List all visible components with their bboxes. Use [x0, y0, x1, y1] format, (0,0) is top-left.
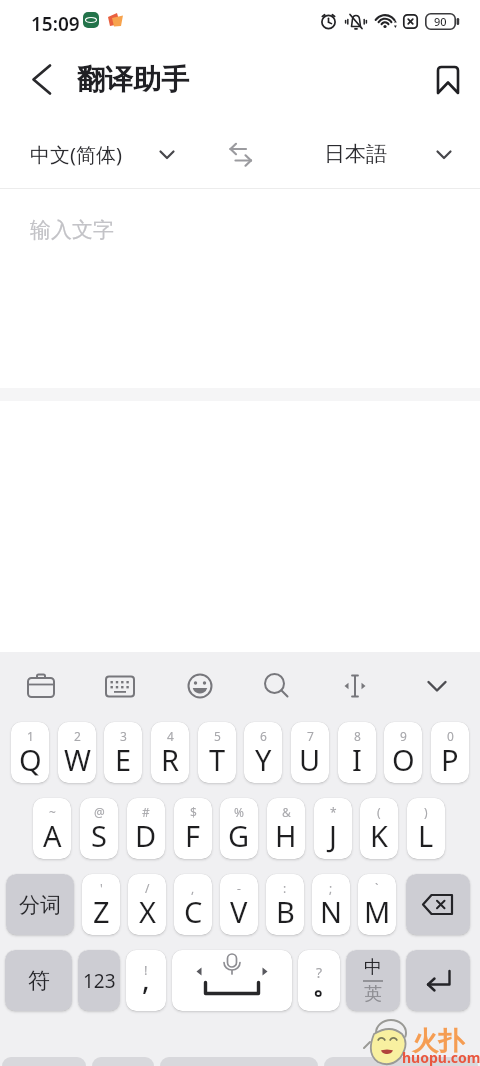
staticText: 0 — [447, 728, 454, 744]
staticText: I — [352, 740, 362, 779]
button[interactable]: ? — [298, 950, 340, 1011]
staticText: O — [392, 740, 415, 779]
button[interactable]: # — [127, 798, 165, 859]
staticText: 中 — [364, 956, 382, 979]
staticText: Z — [93, 892, 110, 931]
staticText: X — [139, 892, 156, 931]
button[interactable] — [339, 670, 371, 702]
button[interactable]: 9 — [384, 722, 422, 783]
button[interactable]: 2 — [58, 722, 96, 783]
button[interactable]: 6 — [244, 722, 282, 783]
button[interactable]: / — [128, 874, 166, 935]
staticText: : — [283, 880, 287, 896]
button[interactable]: % — [220, 798, 258, 859]
staticText: % — [234, 804, 244, 820]
staticText: 15:09 — [31, 11, 80, 37]
button[interactable] — [22, 62, 58, 98]
staticText: N — [320, 892, 343, 931]
staticText: 8 — [354, 728, 361, 744]
button[interactable]: : — [266, 874, 304, 935]
button[interactable]: 123 — [78, 950, 120, 1011]
button[interactable]: ) — [407, 798, 445, 859]
button[interactable] — [104, 670, 136, 702]
button[interactable]: 4 — [151, 722, 189, 783]
staticText: 90 — [434, 14, 447, 29]
staticText: P — [441, 740, 459, 779]
staticText: $ — [190, 804, 197, 820]
button[interactable]: 1 — [11, 722, 49, 783]
staticText: 9 — [400, 728, 407, 744]
button[interactable]: 符 — [5, 950, 72, 1011]
staticText: ' — [100, 880, 103, 896]
button[interactable] — [428, 60, 468, 100]
staticText: H — [275, 816, 297, 855]
staticText: 。 — [312, 969, 338, 1002]
button[interactable]: 分词 — [6, 874, 74, 935]
staticText: T — [209, 740, 226, 779]
button[interactable]: ! — [126, 950, 166, 1011]
staticText: S — [91, 816, 107, 855]
staticText: 2 — [74, 728, 81, 744]
staticText: 7 — [307, 728, 314, 744]
button[interactable] — [184, 670, 216, 702]
staticText: 4 — [167, 728, 174, 744]
staticText: 翻译助手 — [77, 62, 189, 97]
staticText: 英 — [364, 983, 382, 1006]
button[interactable] — [406, 950, 470, 1011]
button[interactable]: - — [220, 874, 258, 935]
button[interactable] — [220, 134, 260, 174]
button[interactable]: $ — [174, 798, 212, 859]
staticText: M — [364, 892, 391, 931]
button[interactable]: 日本語 — [310, 132, 470, 176]
staticText: 123 — [83, 968, 116, 994]
button[interactable]: ' — [82, 874, 120, 935]
button[interactable]: & — [267, 798, 305, 859]
staticText: , — [142, 960, 150, 998]
button[interactable]: 3 — [104, 722, 142, 783]
button[interactable] — [406, 874, 470, 935]
staticText: huopu.com — [402, 1048, 480, 1066]
staticText: 5 — [214, 728, 221, 744]
button[interactable] — [421, 670, 453, 702]
staticText: 输入文字 — [30, 217, 114, 243]
button[interactable]: ; — [312, 874, 350, 935]
button[interactable]: ( — [360, 798, 398, 859]
button[interactable]: 8 — [338, 722, 376, 783]
staticText: W — [64, 740, 91, 779]
staticText: * — [330, 804, 337, 820]
staticText: B — [276, 892, 295, 931]
staticText: @ — [94, 804, 105, 820]
staticText: J — [329, 816, 337, 855]
button[interactable]: 中文(简体) — [18, 132, 188, 176]
staticText: ) — [424, 804, 428, 820]
button[interactable] — [260, 670, 292, 702]
button[interactable]: * — [314, 798, 352, 859]
staticText: L — [418, 816, 434, 855]
staticText: , — [191, 880, 195, 896]
button[interactable]: ~ — [33, 798, 71, 859]
button[interactable]: 0 — [431, 722, 469, 783]
staticText: 6 — [260, 728, 267, 744]
staticText: 中文(简体) — [30, 141, 122, 168]
button[interactable] — [25, 670, 57, 702]
staticText: & — [282, 804, 291, 820]
button[interactable]: 7 — [291, 722, 329, 783]
staticText: - — [237, 880, 241, 896]
staticText: 分词 — [19, 892, 61, 918]
staticText: 1 — [27, 728, 34, 744]
button[interactable]: , — [174, 874, 212, 935]
staticText: ? — [316, 963, 323, 982]
staticText: ( — [377, 804, 381, 820]
button[interactable]: @ — [80, 798, 118, 859]
staticText: ` — [375, 880, 379, 896]
staticText: R — [161, 740, 180, 779]
button[interactable]: ` — [358, 874, 396, 935]
staticText: ! — [144, 961, 148, 979]
staticText: 3 — [120, 728, 127, 744]
staticText: K — [370, 816, 388, 855]
button[interactable] — [172, 950, 292, 1011]
staticText: F — [185, 816, 201, 855]
button[interactable]: 5 — [198, 722, 236, 783]
button[interactable]: 中 — [346, 950, 400, 1011]
staticText: D — [135, 816, 157, 855]
